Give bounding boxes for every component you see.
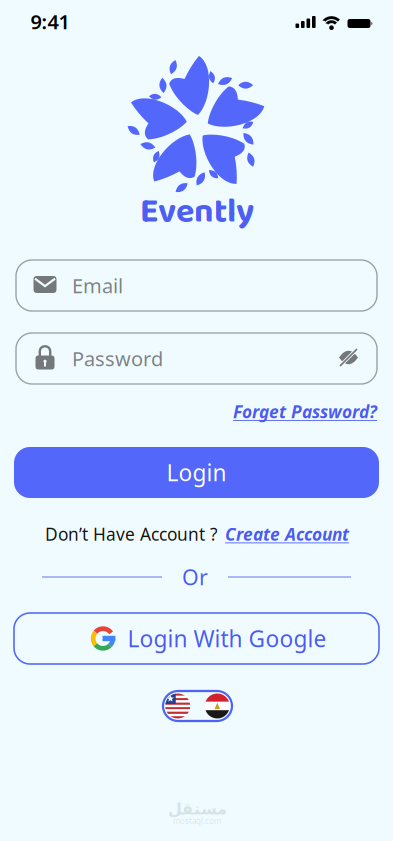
button[interactable]: Create Account [225, 522, 349, 545]
button[interactable] [0, 0, 393, 841]
staticText: Login With Google [127, 623, 326, 653]
button[interactable]: Forget Password? [16, 400, 377, 423]
staticText: Password [72, 345, 163, 372]
staticText: Forget Password? [233, 400, 377, 423]
staticText: Don’t Have Account ? [45, 522, 218, 545]
staticText: mostaql.com [173, 816, 221, 826]
button[interactable] [163, 691, 232, 721]
button[interactable]: Password [16, 333, 377, 384]
staticText: Create Account [225, 522, 349, 545]
button[interactable]: Login [14, 447, 379, 498]
button[interactable]: Email [16, 260, 377, 311]
staticText: 9:41 [30, 8, 69, 35]
button[interactable]: Login With Google [14, 613, 379, 664]
staticText: Evently [140, 185, 254, 239]
staticText: Email [72, 272, 123, 299]
staticText: مستقل [167, 800, 226, 818]
staticText: Login [166, 457, 226, 487]
staticText: Or [182, 563, 208, 591]
